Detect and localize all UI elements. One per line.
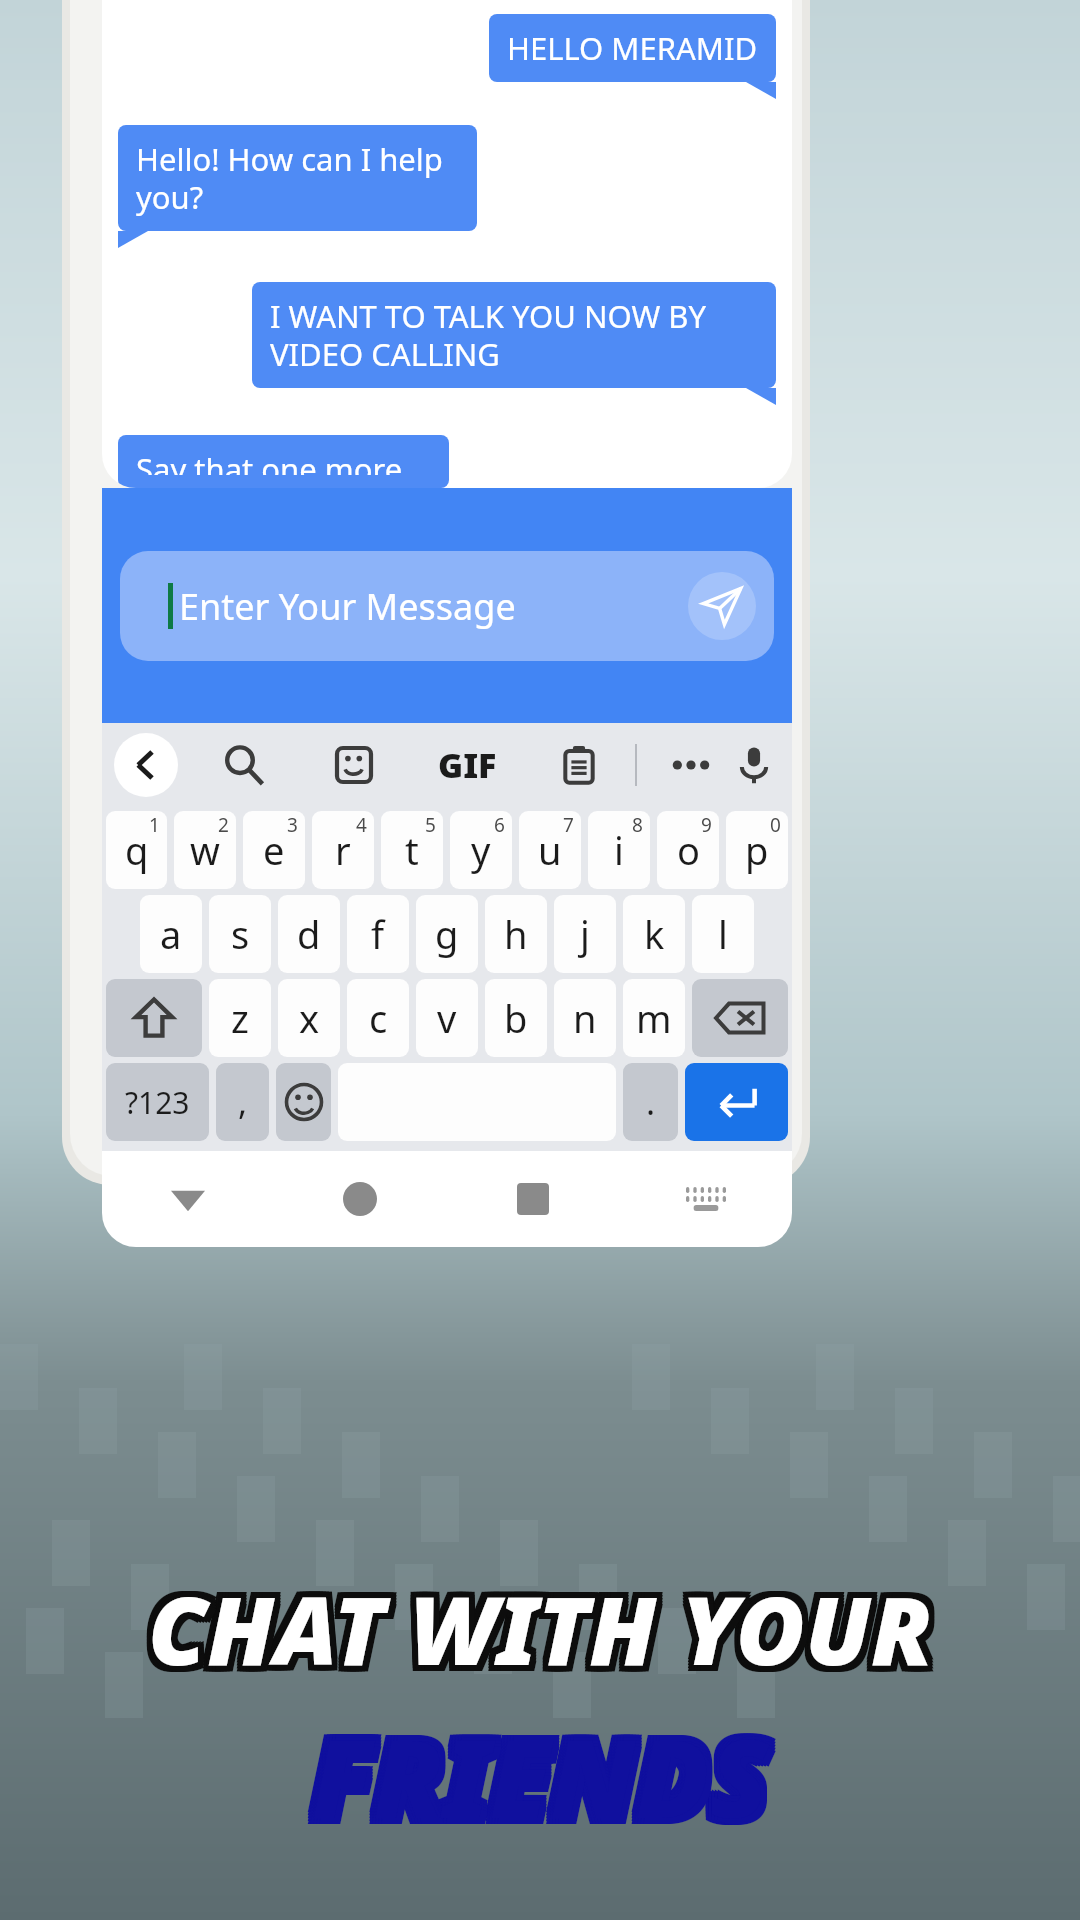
button[interactable]: Enter	[685, 1063, 788, 1141]
staticText: FRIENDS	[315, 1700, 772, 1847]
staticText: CHAT WITH YOUR	[145, 1571, 930, 1699]
staticText: .	[646, 1079, 656, 1125]
staticText: y	[471, 824, 491, 876]
staticText: CHAT WITH YOUR	[148, 1562, 933, 1690]
button[interactable]: o	[657, 811, 719, 889]
staticText: 3	[287, 812, 298, 838]
button[interactable]: m	[623, 979, 685, 1057]
button[interactable]: ?123	[106, 1063, 209, 1141]
button[interactable]: ,	[216, 1063, 269, 1141]
button[interactable]: Recents	[446, 1151, 619, 1247]
button[interactable]: HELLO MERAMID	[489, 14, 776, 82]
staticText: 9	[701, 812, 712, 838]
staticText: d	[297, 908, 321, 960]
staticText: o	[677, 824, 700, 876]
button[interactable]: b	[485, 979, 547, 1057]
button[interactable]: d	[278, 895, 340, 973]
button[interactable]: p	[726, 811, 788, 889]
staticText: 7	[563, 812, 574, 838]
button[interactable]: g	[416, 895, 478, 973]
staticText: 1	[149, 812, 160, 838]
button[interactable]: Shift	[106, 979, 202, 1057]
staticText: CHAT WITH YOUR	[142, 1571, 927, 1699]
button[interactable]: Send	[688, 572, 756, 640]
button[interactable]: Enter Your Message	[120, 551, 774, 661]
button[interactable]: l	[692, 895, 754, 973]
button[interactable]: u	[519, 811, 581, 889]
staticText: Hello! How can I help you?	[136, 138, 459, 218]
staticText: FRIENDS	[309, 1700, 766, 1847]
button[interactable]: I WANT TO TALK YOU NOW BY VIDEO CALLING	[252, 282, 776, 388]
button[interactable]: .	[623, 1063, 678, 1141]
button[interactable]: Hello! How can I help you?	[118, 125, 477, 231]
button[interactable]: c	[347, 979, 409, 1057]
staticText: FRIENDS	[312, 1703, 769, 1850]
button[interactable]: Search	[218, 739, 270, 791]
staticText: m	[636, 992, 672, 1044]
staticText: CHAT WITH YOUR	[151, 1562, 936, 1690]
staticText: FRIENDS	[318, 1703, 775, 1850]
button[interactable]: More options	[665, 739, 717, 791]
button[interactable]: s	[209, 895, 271, 973]
staticText: e	[263, 824, 285, 876]
staticText: FRIENDS	[318, 1709, 775, 1856]
staticText: u	[538, 824, 562, 876]
button[interactable]: Home	[274, 1151, 446, 1247]
staticText: t	[405, 824, 419, 876]
staticText: Say that one more time?	[136, 448, 431, 475]
staticText: FRIENDS	[312, 1709, 769, 1856]
staticText: CHAT WITH YOUR	[151, 1571, 936, 1699]
button[interactable]: n	[554, 979, 616, 1057]
button[interactable]: Back	[102, 1151, 274, 1247]
staticText: a	[160, 908, 182, 960]
staticText: FRIENDS	[312, 1697, 769, 1844]
staticText: CHAT WITH YOUR	[151, 1568, 936, 1696]
button[interactable]: Say that one more time?	[118, 435, 449, 488]
button[interactable]: q	[106, 811, 167, 889]
button[interactable]: Stickers	[328, 739, 380, 791]
button[interactable]: j	[554, 895, 616, 973]
button[interactable]: t	[381, 811, 443, 889]
staticText: 0	[770, 812, 781, 838]
button[interactable]: i	[588, 811, 650, 889]
button[interactable]: Backspace	[692, 979, 788, 1057]
staticText: ?123	[125, 1082, 190, 1123]
button[interactable]: y	[450, 811, 512, 889]
button[interactable]: f	[347, 895, 409, 973]
staticText: CHAT WITH YOUR	[151, 1559, 936, 1687]
button[interactable]: w	[174, 811, 236, 889]
staticText: FRIENDS	[318, 1700, 775, 1847]
button[interactable]: h	[485, 895, 547, 973]
staticText: FRIENDS	[315, 1706, 772, 1853]
staticText: CHAT WITH YOUR	[148, 1559, 933, 1687]
staticText: v	[437, 992, 457, 1044]
button[interactable]: r	[312, 811, 374, 889]
staticText: CHAT WITH YOUR	[154, 1568, 939, 1696]
staticText: GIF	[438, 742, 497, 788]
button[interactable]: v	[416, 979, 478, 1057]
staticText: j	[580, 908, 590, 960]
button[interactable]: Back	[114, 733, 178, 797]
button[interactable]: x	[278, 979, 340, 1057]
button[interactable]: z	[209, 979, 271, 1057]
button[interactable]: e	[243, 811, 305, 889]
staticText: CHAT WITH YOUR	[154, 1571, 939, 1699]
staticText: h	[504, 908, 528, 960]
staticText: FRIENDS	[306, 1703, 763, 1850]
staticText: FRIENDS	[309, 1703, 766, 1850]
staticText: FRIENDS	[309, 1706, 766, 1853]
button[interactable]: Voice input	[728, 739, 780, 791]
staticText: ,	[238, 1079, 248, 1125]
staticText: g	[435, 908, 459, 960]
staticText: FRIENDS	[306, 1700, 763, 1847]
button[interactable]: Clipboard	[553, 739, 605, 791]
button[interactable]: a	[140, 895, 202, 973]
button[interactable]: Keyboard	[619, 1151, 792, 1247]
button[interactable]: GIF	[438, 742, 497, 788]
staticText: CHAT WITH YOUR	[142, 1562, 927, 1690]
button[interactable]: k	[623, 895, 685, 973]
button[interactable]: Emoji	[276, 1063, 331, 1141]
staticText: q	[125, 824, 149, 876]
staticText: I WANT TO TALK YOU NOW BY VIDEO CALLING	[270, 295, 758, 375]
